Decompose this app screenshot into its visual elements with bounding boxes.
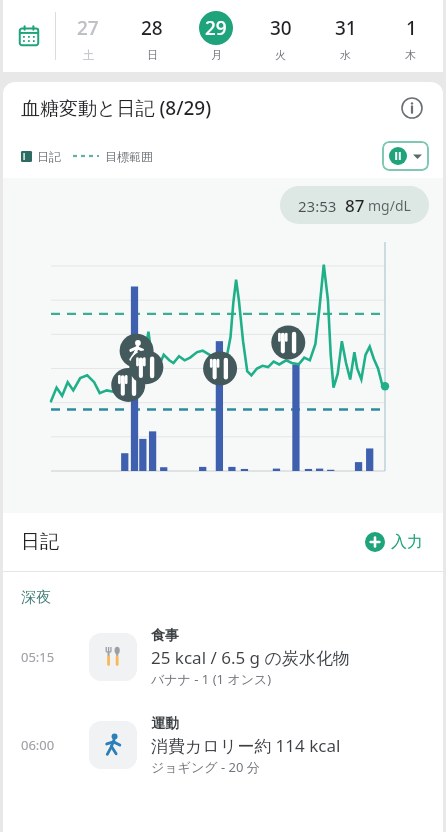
- button[interactable]: 1: [378, 0, 443, 72]
- button[interactable]: 入力: [361, 528, 427, 556]
- staticText: 日記: [37, 149, 61, 164]
- staticText: 目標範囲: [105, 149, 153, 164]
- staticText: 05:15: [21, 648, 85, 666]
- staticText: 06:00: [21, 736, 85, 754]
- button[interactable]: Information: [395, 91, 429, 125]
- staticText: 28: [141, 15, 163, 41]
- staticText: 日: [147, 48, 158, 62]
- button[interactable]: Filter entries: [382, 141, 429, 171]
- staticText: 消費カロリー約 114 kcal: [151, 734, 341, 757]
- button[interactable]: 06:00: [3, 701, 443, 789]
- staticText: 30: [270, 15, 292, 41]
- button[interactable]: 31: [313, 0, 378, 72]
- staticText: 入力: [391, 532, 423, 552]
- staticText: 木: [405, 48, 416, 62]
- staticText: 25 kcal / 6.5 g の炭水化物: [151, 646, 350, 669]
- button[interactable]: 05:15: [3, 613, 443, 701]
- staticText: 23:53: [298, 196, 337, 216]
- staticText: 27: [77, 15, 99, 41]
- staticText: 月: [211, 48, 222, 62]
- button[interactable]: 23:53: [280, 186, 429, 224]
- staticText: 31: [335, 15, 357, 41]
- staticText: 火: [275, 48, 286, 62]
- staticText: 87: [345, 194, 365, 217]
- button[interactable]: 28: [120, 0, 184, 72]
- staticText: 食事: [151, 627, 179, 645]
- staticText: 運動: [151, 715, 179, 733]
- staticText: ジョギング - 20 分: [151, 758, 260, 776]
- button[interactable]: 27: [56, 0, 120, 72]
- staticText: 日記: [21, 530, 59, 554]
- button[interactable]: Calendar: [3, 0, 55, 72]
- staticText: 血糖変動と日記 (8/29): [21, 95, 395, 121]
- staticText: 深夜: [21, 588, 51, 607]
- button[interactable]: 29: [184, 0, 248, 72]
- staticText: 1: [406, 15, 417, 41]
- staticText: mg/dL: [368, 196, 411, 215]
- staticText: 水: [340, 48, 351, 62]
- button[interactable]: 30: [248, 0, 313, 72]
- staticText: バナナ - 1 (1 オンス): [151, 670, 272, 688]
- staticText: 29: [205, 15, 227, 41]
- staticText: 土: [83, 48, 94, 62]
